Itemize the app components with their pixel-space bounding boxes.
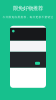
staticText: 今日限免应用推荐，每日更新不要错过 — [2, 16, 53, 19]
staticText: 限免好物推荐 — [13, 5, 43, 12]
